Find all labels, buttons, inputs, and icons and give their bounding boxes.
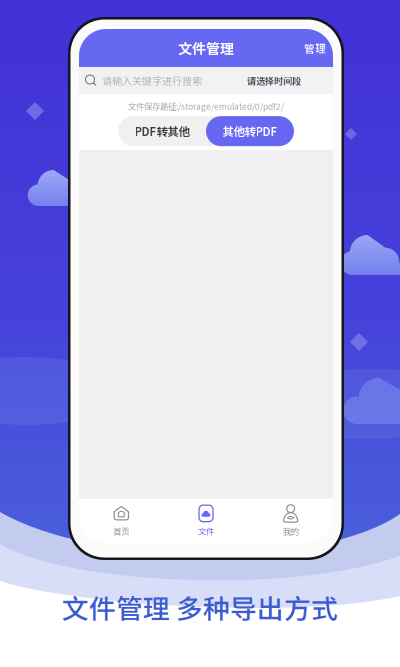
button[interactable]: 请选择时间段 — [247, 70, 301, 91]
button[interactable]: 其他转PDF — [206, 116, 294, 146]
staticText: 文件保存路径:/storage/emulated/0/pdf2/ — [128, 100, 284, 112]
staticText: 首页 — [113, 525, 129, 537]
staticText: PDF转其他 — [134, 123, 189, 139]
staticText: 文件管理 多种导出方式 — [62, 588, 338, 626]
button[interactable]: 文件 — [164, 505, 248, 537]
staticText: 管理 — [304, 40, 326, 56]
button[interactable]: 我的 — [248, 505, 333, 537]
staticText: 请输入关键字进行搜索 — [102, 73, 202, 88]
staticText: 其他转PDF — [222, 123, 277, 139]
staticText: 请选择时间段 — [247, 74, 301, 87]
button[interactable]: PDF转其他 — [118, 116, 206, 146]
button[interactable]: 管理 — [299, 36, 331, 60]
staticText: 我的 — [283, 525, 299, 537]
staticText: 文件 — [198, 525, 214, 537]
button[interactable]: 首页 — [79, 505, 164, 537]
staticText: 文件管理 — [178, 38, 234, 58]
